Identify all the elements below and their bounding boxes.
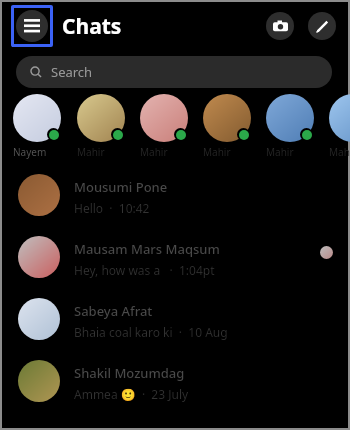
staticText: Mahir [203, 145, 231, 159]
staticText: Chats [62, 12, 122, 41]
button[interactable]: New message [308, 12, 336, 40]
staticText: Nayem [13, 145, 47, 159]
staticText: Mahir [266, 145, 294, 159]
staticText: Search [51, 63, 93, 81]
staticText: Sabeya Afrat [74, 302, 153, 320]
staticText: Shakil Mozumdag [74, 364, 185, 382]
button[interactable]: Search [16, 56, 332, 88]
button[interactable]: Story 2 [135, 94, 193, 162]
staticText: Hey, how was a · 1:04pt [74, 262, 215, 278]
button[interactable]: Open navigation menu [11, 5, 53, 47]
button[interactable]: Story 3 [198, 94, 256, 162]
button[interactable]: Camera [266, 12, 294, 40]
button[interactable]: Story 5 [324, 94, 350, 162]
button[interactable]: Mousumi Pone [2, 164, 348, 226]
staticText: Ammea 🙂 · 23 July [74, 386, 189, 402]
button[interactable]: Story 4 [261, 94, 319, 162]
button[interactable]: Sabeya Afrat [2, 288, 348, 350]
staticText: Mousumi Pone [74, 178, 168, 196]
staticText: Mahir [140, 145, 168, 159]
staticText: Mahir [77, 145, 105, 159]
button[interactable]: Shakil Mozumdag [2, 350, 348, 412]
staticText: Hello · 10:42 [74, 200, 150, 216]
button[interactable]: Mausam Mars Maqsum [2, 226, 348, 288]
button[interactable]: Story 1 [72, 94, 130, 162]
staticText: Mausam Mars Maqsum [74, 240, 220, 258]
staticText: Mahir [329, 145, 350, 159]
button[interactable]: Story 0 [8, 94, 66, 162]
staticText: Bhaia coal karo ki · 10 Aug [74, 324, 228, 340]
